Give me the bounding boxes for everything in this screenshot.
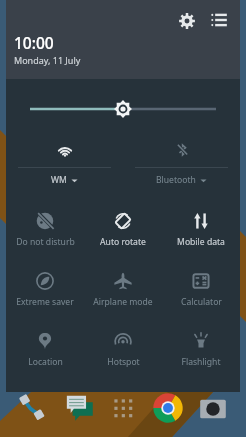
button[interactable]: Bluetooth <box>123 138 240 188</box>
staticText: Auto rotate <box>100 236 146 248</box>
button[interactable]: Flashlight <box>162 322 240 382</box>
staticText: WM <box>51 174 67 186</box>
staticText: Bluetooth <box>156 174 196 186</box>
button[interactable]: Extreme saver <box>6 262 84 322</box>
button[interactable]: Mobile data <box>162 202 240 262</box>
staticText: 10:00 <box>14 32 54 53</box>
button[interactable]: Location <box>6 322 84 382</box>
button[interactable]: Chrome <box>152 392 184 424</box>
button[interactable]: All apps <box>107 392 139 424</box>
button[interactable]: Settings <box>175 9 199 33</box>
button[interactable]: Camera <box>197 392 229 424</box>
staticText: Monday, 11 July <box>14 54 81 66</box>
button[interactable]: Do not disturb <box>6 202 84 262</box>
staticText: Location <box>28 356 63 368</box>
button[interactable]: Hotspot <box>84 322 162 382</box>
button[interactable]: Airplane mode <box>84 262 162 322</box>
staticText: Hotspot <box>107 356 140 368</box>
staticText: Mobile data <box>177 236 225 248</box>
staticText: Airplane mode <box>93 296 153 308</box>
staticText: Extreme saver <box>16 296 74 308</box>
staticText: Calculator <box>181 296 222 308</box>
staticText: Do not disturb <box>16 236 75 248</box>
button[interactable]: Edit quick settings <box>207 8 231 32</box>
button[interactable]: Phone <box>16 392 48 424</box>
staticText: Flashlight <box>181 356 221 368</box>
button[interactable]: Messages <box>63 392 95 424</box>
button[interactable]: Calculator <box>162 262 240 322</box>
button[interactable]: WM <box>6 138 123 188</box>
button[interactable]: Auto rotate <box>84 202 162 262</box>
